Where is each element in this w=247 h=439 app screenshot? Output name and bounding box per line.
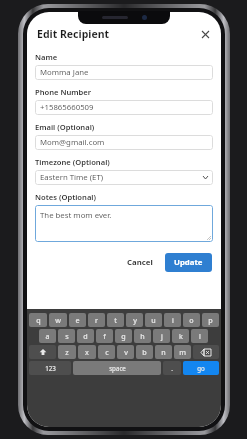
button[interactable]: s (58, 329, 75, 343)
staticText: v (124, 347, 128, 357)
button[interactable]: x (78, 345, 96, 359)
button[interactable]: The best mom ever. (35, 205, 213, 242)
button[interactable]: j (153, 329, 170, 343)
staticText: h (140, 331, 145, 341)
staticText: Phone Number (35, 87, 92, 97)
staticText: u (151, 315, 156, 325)
staticText: l (199, 331, 201, 341)
button[interactable]: Shift (29, 345, 56, 359)
staticText: o (189, 315, 194, 325)
button[interactable]: space (73, 361, 161, 375)
button[interactable]: a (39, 329, 56, 343)
staticText: Mom@gmail.com (40, 137, 105, 148)
button[interactable]: n (155, 345, 172, 359)
staticText: Edit Recipient (37, 27, 110, 41)
staticText: i (172, 315, 174, 325)
staticText: Eastern Time (ET) (40, 172, 104, 183)
button[interactable]: t (107, 313, 124, 327)
staticText: a (45, 331, 50, 341)
button[interactable]: p (202, 313, 219, 327)
staticText: x (85, 347, 89, 357)
staticText: w (55, 315, 61, 325)
button[interactable]: . (163, 361, 181, 375)
button[interactable]: Momma Jane (35, 65, 213, 80)
staticText: Email (Optional) (35, 122, 95, 132)
staticText: y (133, 315, 137, 325)
staticText: 123 (45, 364, 56, 372)
staticText: The best mom ever. (40, 210, 112, 221)
button[interactable]: q (29, 313, 47, 327)
button[interactable]: w (49, 313, 67, 327)
staticText: go (197, 364, 205, 372)
button[interactable]: +15865660509 (35, 100, 213, 115)
staticText: j (161, 331, 163, 341)
button[interactable]: m (174, 345, 191, 359)
staticText: p (208, 315, 213, 325)
button[interactable]: Mom@gmail.com (35, 135, 213, 150)
button[interactable]: k (172, 329, 189, 343)
button[interactable]: z (58, 345, 76, 359)
staticText: z (65, 347, 69, 357)
button[interactable]: Update (165, 253, 212, 272)
button[interactable]: h (134, 329, 151, 343)
button[interactable]: l (191, 329, 208, 343)
button[interactable]: f (96, 329, 113, 343)
staticText: Name (35, 52, 58, 62)
staticText: Timezone (Optional) (35, 157, 110, 167)
button[interactable]: Backspace (193, 345, 219, 359)
staticText: g (121, 331, 126, 341)
staticText: b (142, 347, 147, 357)
button[interactable]: d (77, 329, 94, 343)
staticText: d (83, 331, 88, 341)
button[interactable]: go (183, 361, 219, 375)
button[interactable]: e (69, 313, 86, 327)
button[interactable]: Cancel (122, 254, 158, 271)
staticText: e (75, 315, 80, 325)
staticText: r (95, 315, 98, 325)
staticText: Notes (Optional) (35, 192, 96, 202)
button[interactable]: i (164, 313, 181, 327)
staticText: Momma Jane (40, 67, 89, 78)
staticText: f (103, 331, 106, 341)
staticText: m (179, 347, 186, 357)
staticText: q (36, 315, 41, 325)
button[interactable]: o (183, 313, 200, 327)
staticText: Update (174, 257, 203, 268)
staticText: Cancel (127, 257, 153, 268)
staticText: t (114, 315, 117, 325)
staticText: c (105, 347, 109, 357)
button[interactable]: g (115, 329, 132, 343)
button[interactable]: u (145, 313, 162, 327)
staticText: s (65, 331, 69, 341)
staticText: . (171, 364, 173, 372)
button[interactable]: r (88, 313, 105, 327)
button[interactable]: Eastern Time (ET) (35, 170, 213, 185)
button[interactable]: 123 (29, 361, 71, 375)
button[interactable]: y (126, 313, 143, 327)
staticText: k (179, 331, 183, 341)
button[interactable]: c (98, 345, 115, 359)
button[interactable]: Close (197, 26, 213, 42)
staticText: +15865660509 (40, 102, 94, 113)
button[interactable]: v (117, 345, 134, 359)
staticText: space (109, 364, 126, 372)
staticText: n (161, 347, 166, 357)
button[interactable]: b (136, 345, 153, 359)
